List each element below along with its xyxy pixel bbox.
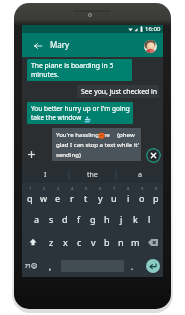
staticText: 8 xyxy=(127,186,130,191)
staticText: See you, just checked in xyxy=(81,87,157,96)
staticText: f xyxy=(77,213,81,225)
button[interactable]: k xyxy=(128,207,142,231)
staticText: 1 xyxy=(29,186,32,191)
staticText: g xyxy=(90,213,96,225)
staticText: the xyxy=(87,170,98,180)
staticText: 0 xyxy=(155,186,158,191)
button[interactable]: a xyxy=(116,166,163,183)
staticText: 7 xyxy=(113,186,116,191)
staticText: r xyxy=(70,192,74,204)
staticText: , xyxy=(49,261,52,272)
staticText: h xyxy=(104,213,110,225)
staticText: 3 xyxy=(57,186,60,191)
button[interactable]: l xyxy=(142,207,156,231)
button[interactable]: Enter xyxy=(146,259,160,273)
button[interactable]: x xyxy=(58,230,72,254)
staticText: 6 xyxy=(99,186,102,191)
button[interactable]: the xyxy=(69,166,116,183)
staticText: o xyxy=(139,192,145,204)
staticText: b xyxy=(104,236,110,248)
button[interactable]: c xyxy=(72,230,86,254)
button[interactable]: d xyxy=(58,207,72,231)
button[interactable]: You're hassling me (phew glad I can stop… xyxy=(52,128,141,161)
button[interactable]: n xyxy=(114,230,128,254)
button[interactable]: Add attachment xyxy=(25,148,38,161)
button[interactable]: s xyxy=(44,207,58,231)
button[interactable]: a xyxy=(29,207,44,231)
staticText: The plane is boarding in 5 minutes. xyxy=(31,61,114,79)
staticText: 5 xyxy=(85,186,88,191)
button[interactable]: 2 xyxy=(37,183,51,207)
staticText: p xyxy=(153,192,159,204)
staticText: You're hassling me (phew glad I can stop… xyxy=(56,130,139,159)
button[interactable]: The plane is boarding in 5 minutes. xyxy=(27,59,132,81)
staticText: d xyxy=(62,213,68,225)
button[interactable]: z xyxy=(44,230,58,254)
staticText: j xyxy=(120,213,123,225)
staticText: c xyxy=(77,236,82,248)
button[interactable]: I xyxy=(22,166,69,183)
staticText: n xyxy=(118,236,124,248)
button[interactable]: Shift xyxy=(22,230,44,254)
staticText: a xyxy=(34,213,40,225)
button[interactable]: g xyxy=(86,207,100,231)
staticText: y xyxy=(98,192,103,204)
button[interactable]: 0 xyxy=(149,183,163,207)
staticText: I xyxy=(44,170,47,180)
staticText: z xyxy=(49,236,54,248)
button[interactable]: Cancel sending xyxy=(146,148,161,163)
button[interactable]: j xyxy=(114,207,128,231)
staticText: l xyxy=(148,213,151,225)
button[interactable]: 3 xyxy=(51,183,65,207)
staticText: q xyxy=(27,192,33,204)
staticText: x xyxy=(63,236,68,248)
button[interactable]: You better hurry up or I'm going take th… xyxy=(27,102,133,124)
button[interactable]: 7 xyxy=(107,183,121,207)
button[interactable]: m xyxy=(128,230,142,254)
staticText: ?1☺ xyxy=(25,262,38,270)
button[interactable]: 6 xyxy=(93,183,107,207)
button[interactable]: See you, just checked in xyxy=(77,85,159,98)
staticText: m xyxy=(131,236,140,248)
staticText: . xyxy=(131,261,134,272)
button[interactable]: 9 xyxy=(135,183,149,207)
staticText: w xyxy=(40,192,48,204)
button[interactable]: h xyxy=(100,207,114,231)
staticText: t xyxy=(84,192,88,204)
staticText: a xyxy=(138,170,142,180)
button[interactable]: f xyxy=(72,207,86,231)
staticText: Mary xyxy=(50,39,70,50)
staticText: 2 xyxy=(43,186,46,191)
button[interactable]: 4 xyxy=(65,183,79,207)
button[interactable]: ?1☺ xyxy=(23,254,39,278)
button[interactable]: Contact photo xyxy=(144,40,157,53)
staticText: You better hurry up or I'm going take th… xyxy=(31,104,130,122)
button[interactable]: , xyxy=(43,254,57,278)
staticText: s xyxy=(49,213,54,225)
staticText: e xyxy=(55,192,61,204)
button[interactable]: b xyxy=(100,230,114,254)
button[interactable]: 8 xyxy=(121,183,135,207)
staticText: 4 xyxy=(71,186,74,191)
button[interactable]: Back xyxy=(31,39,44,52)
button[interactable]: v xyxy=(86,230,100,254)
staticText: k xyxy=(133,213,138,225)
button[interactable]: 5 xyxy=(79,183,93,207)
staticText: v xyxy=(91,236,96,248)
staticText: u xyxy=(111,192,117,204)
staticText: 16:00 xyxy=(145,25,161,33)
button[interactable]: . xyxy=(125,254,139,278)
button[interactable]: 1 xyxy=(22,183,37,207)
staticText: 9 xyxy=(141,186,144,191)
staticText: i xyxy=(127,192,130,204)
button[interactable]: Backspace xyxy=(142,230,163,254)
